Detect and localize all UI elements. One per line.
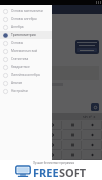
button[interactable]: [62, 130, 82, 140]
button[interactable]: [42, 120, 62, 130]
button[interactable]: [42, 150, 62, 160]
staticText: Анализ: [11, 81, 23, 85]
staticText: Линейная алгебра: [11, 73, 40, 77]
staticText: Алгебра: [11, 25, 24, 29]
staticText: Основы алгебры: [11, 17, 37, 21]
button[interactable]: [82, 120, 102, 130]
button[interactable]: Основы алгебры: [0, 15, 52, 23]
button[interactable]: Анализ: [0, 79, 52, 87]
button[interactable]: [62, 140, 82, 150]
staticText: Квадратные: [11, 65, 30, 69]
button[interactable]: [42, 130, 62, 140]
button[interactable]: [82, 140, 102, 150]
button[interactable]: Линейная алгебра: [0, 71, 52, 79]
button[interactable]: Основы: [0, 39, 52, 47]
staticText: Тригонометрия: [11, 33, 36, 37]
button[interactable]: Квадратные: [0, 63, 52, 71]
button[interactable]: [42, 140, 62, 150]
staticText: SOFT: [59, 165, 87, 180]
staticText: sin x² x: [83, 114, 96, 119]
button[interactable]: Алгебра: [0, 23, 52, 31]
button[interactable]: [82, 130, 102, 140]
button[interactable]: Тригонометрия: [0, 31, 52, 39]
button[interactable]: [62, 150, 82, 160]
button[interactable]: Camera: [91, 103, 99, 111]
button[interactable]: [62, 120, 82, 130]
button[interactable]: [77, 48, 97, 52]
button[interactable]: [82, 150, 102, 160]
button[interactable]: Основы математики: [0, 7, 52, 15]
staticText: Основы: [11, 41, 24, 45]
staticText: FREE: [33, 165, 59, 180]
button[interactable]: Математический: [0, 47, 52, 55]
staticText: Лучшие бесплатные программы: [33, 161, 75, 165]
staticText: Статистика: [11, 57, 29, 61]
button[interactable]: Статистика: [0, 55, 52, 63]
staticText: Математический: [11, 49, 38, 53]
staticText: Основы математики: [11, 9, 43, 13]
staticText: Настройки: [11, 89, 28, 93]
button[interactable]: Настройки: [0, 87, 52, 95]
